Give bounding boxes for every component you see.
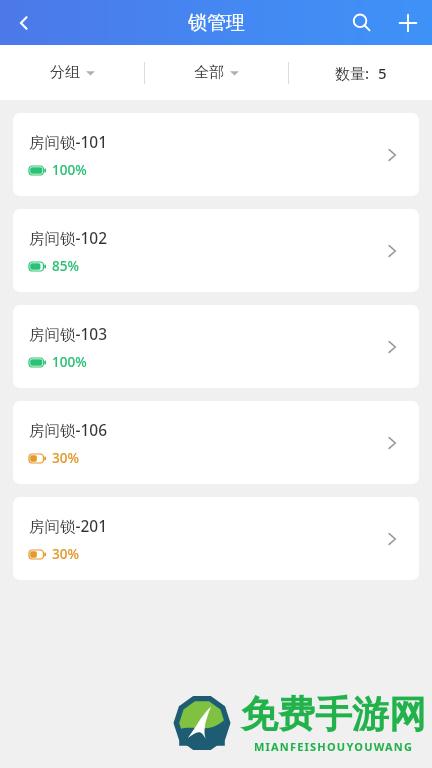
staticText: 锁管理 — [188, 11, 245, 35]
staticText: 100% — [52, 353, 87, 371]
button[interactable]: Search — [338, 0, 384, 45]
staticText: 免费手游网 — [241, 691, 426, 738]
button[interactable]: 房间锁-106 — [13, 401, 419, 484]
button[interactable]: 房间锁-103 — [13, 305, 419, 388]
staticText: 房间锁-106 — [29, 419, 108, 440]
staticText: 30% — [52, 545, 79, 563]
staticText: 房间锁-103 — [29, 323, 108, 344]
button[interactable]: 房间锁-102 — [13, 209, 419, 292]
staticText: 30% — [52, 449, 79, 467]
staticText: MIANFEISHOUYOUWANG — [254, 739, 414, 754]
button[interactable]: Back — [0, 0, 48, 45]
button[interactable]: 全部 — [145, 45, 288, 100]
staticText: 房间锁-201 — [29, 515, 108, 536]
staticText: 5 — [378, 63, 387, 83]
staticText: 全部 — [194, 63, 224, 82]
button[interactable]: 房间锁-201 — [13, 497, 419, 580]
staticText: 分组 — [50, 63, 80, 82]
staticText: 数量: — [335, 63, 370, 83]
staticText: 100% — [52, 161, 87, 179]
staticText: 85% — [52, 257, 79, 275]
button[interactable]: 房间锁-101 — [13, 113, 419, 196]
staticText: 房间锁-101 — [29, 131, 108, 152]
button[interactable]: 分组 — [0, 45, 144, 100]
button[interactable]: Add — [384, 0, 432, 45]
staticText: 房间锁-102 — [29, 227, 108, 248]
